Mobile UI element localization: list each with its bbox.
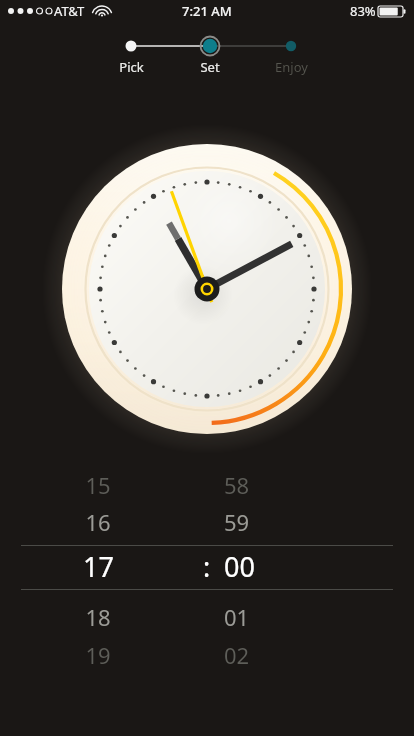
button[interactable]: Enjoy: [257, 56, 325, 78]
staticText: 18: [85, 602, 111, 632]
button[interactable]: Pick: [97, 56, 165, 78]
staticText: 01: [224, 602, 250, 632]
button[interactable]: 19: [0, 638, 414, 672]
button[interactable]: 18: [0, 600, 414, 634]
staticText: Enjoy: [275, 58, 308, 76]
staticText: AT&T: [54, 2, 85, 20]
staticText: Pick: [119, 58, 144, 76]
button[interactable]: 15: [0, 468, 414, 502]
staticText: Set: [200, 58, 220, 76]
button[interactable]: Analog clock showing 17:00: [52, 134, 362, 444]
staticText: 02: [224, 640, 250, 670]
staticText: 19: [85, 640, 111, 670]
staticText: 00: [224, 548, 255, 585]
button[interactable]: 17: [0, 545, 414, 587]
staticText: 59: [224, 507, 250, 537]
staticText: :: [203, 548, 211, 585]
staticText: 17: [83, 548, 114, 585]
staticText: 15: [85, 470, 111, 500]
staticText: 16: [85, 507, 111, 537]
button[interactable]: Set: [176, 56, 244, 78]
staticText: 58: [224, 470, 250, 500]
button[interactable]: 16: [0, 505, 414, 539]
staticText: 7:21 AM: [182, 2, 232, 20]
staticText: 83%: [350, 2, 376, 20]
